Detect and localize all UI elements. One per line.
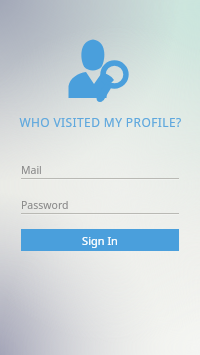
staticText: Password — [21, 198, 69, 212]
staticText: Mail — [21, 163, 42, 177]
button[interactable]: Sign In — [21, 229, 179, 251]
staticText: Sign In — [82, 233, 118, 248]
button[interactable]: Password — [21, 196, 179, 215]
staticText: WHO VISITED MY PROFILE? — [19, 114, 182, 130]
button[interactable]: Mail — [21, 161, 179, 180]
other: App logo — [64, 36, 136, 102]
